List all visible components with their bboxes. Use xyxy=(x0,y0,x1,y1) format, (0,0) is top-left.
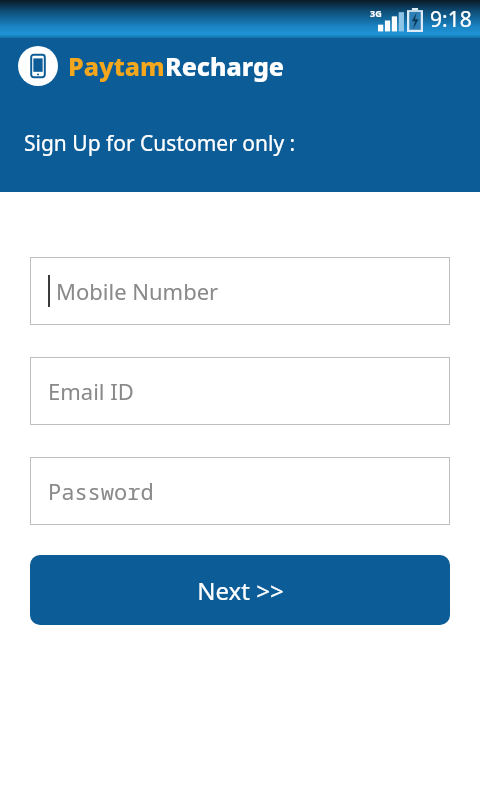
button[interactable]: Mobile Number xyxy=(30,257,450,325)
staticText: Paytam xyxy=(68,49,165,83)
staticText: 9:18 xyxy=(430,5,472,34)
staticText: 3G xyxy=(370,7,382,19)
staticText: Recharge xyxy=(165,49,284,83)
staticText: Sign Up for Customer only : xyxy=(24,129,296,158)
staticText: Email ID xyxy=(48,376,134,406)
staticText: Password xyxy=(48,476,154,506)
button[interactable]: Next >> xyxy=(30,555,450,625)
staticText: Next >> xyxy=(197,574,284,607)
button[interactable]: Password xyxy=(30,457,450,525)
staticText: Mobile Number xyxy=(56,276,219,306)
button[interactable]: Email ID xyxy=(30,357,450,425)
